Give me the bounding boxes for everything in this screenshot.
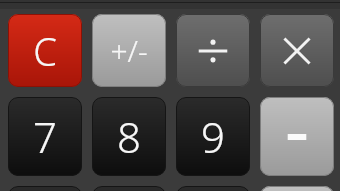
button[interactable]: C: [8, 14, 82, 87]
button[interactable]: Plus: [260, 186, 334, 191]
staticText: 7: [33, 108, 57, 165]
button[interactable]: Minus: [260, 97, 334, 176]
staticText: 8: [117, 108, 141, 165]
button[interactable]: 4: [8, 186, 82, 191]
staticText: C: [33, 25, 57, 77]
button[interactable]: 6: [176, 186, 250, 191]
button[interactable]: 8: [92, 97, 166, 176]
button[interactable]: 7: [8, 97, 82, 176]
staticText: +/-: [110, 30, 148, 71]
button[interactable]: Multiply: [260, 14, 334, 87]
button[interactable]: 9: [176, 97, 250, 176]
button[interactable]: +/-: [92, 14, 166, 87]
button[interactable]: Divide: [176, 14, 250, 87]
button[interactable]: 5: [92, 186, 166, 191]
staticText: 9: [201, 108, 225, 165]
